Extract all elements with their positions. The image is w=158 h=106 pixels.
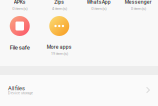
button[interactable]: Messenger <box>118 0 158 10</box>
staticText: 0 item(s) <box>131 6 146 11</box>
button[interactable]: Zips <box>39 0 79 10</box>
button[interactable]: File safe <box>0 16 39 51</box>
staticText: Messenger <box>125 0 152 5</box>
staticText: All files <box>8 85 25 92</box>
button[interactable]: WhatsApp <box>79 0 118 10</box>
staticText: 19 item(s) <box>51 51 68 56</box>
button[interactable]: All files <box>0 75 158 106</box>
button[interactable]: APKs <box>0 0 39 10</box>
staticText: 0 item(s) <box>12 6 27 11</box>
staticText: WhatsApp <box>87 0 111 5</box>
staticText: Device storage <box>8 91 33 95</box>
staticText: 0 item(s) <box>91 6 106 11</box>
staticText: More apps <box>47 44 72 50</box>
staticText: APKs <box>14 0 26 5</box>
button[interactable]: More apps <box>39 16 79 56</box>
staticText: File safe <box>10 44 30 51</box>
staticText: 4 item(s) <box>52 6 67 11</box>
staticText: Zips <box>54 0 64 5</box>
